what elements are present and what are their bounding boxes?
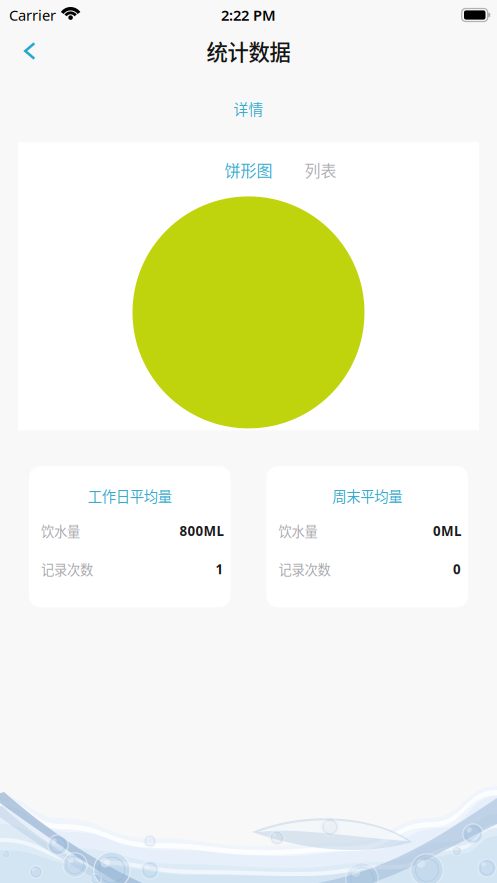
staticText: 0 (453, 560, 461, 578)
button[interactable]: 饼形图 (224, 155, 272, 184)
staticText: 饼形图 (224, 158, 272, 181)
staticText: 饮水量 (278, 521, 317, 540)
button[interactable]: 详情 (213, 91, 283, 126)
staticText: 1 (215, 560, 223, 578)
staticText: 饮水量 (41, 521, 80, 540)
staticText: Carrier (9, 5, 56, 25)
staticText: 记录次数 (278, 559, 330, 579)
staticText: 0ML (433, 522, 461, 540)
staticText: 列表 (304, 158, 336, 181)
staticText: 记录次数 (41, 559, 93, 579)
staticText: 统计数据 (206, 36, 290, 66)
staticText: 工作日平均量 (88, 485, 172, 506)
button[interactable]: 列表 (304, 155, 336, 184)
button[interactable]: Back (0, 30, 54, 72)
staticText: 800ML (179, 522, 223, 540)
staticText: 详情 (233, 98, 263, 119)
staticText: 2:22 PM (221, 5, 276, 25)
staticText: 周末平均量 (332, 485, 402, 506)
